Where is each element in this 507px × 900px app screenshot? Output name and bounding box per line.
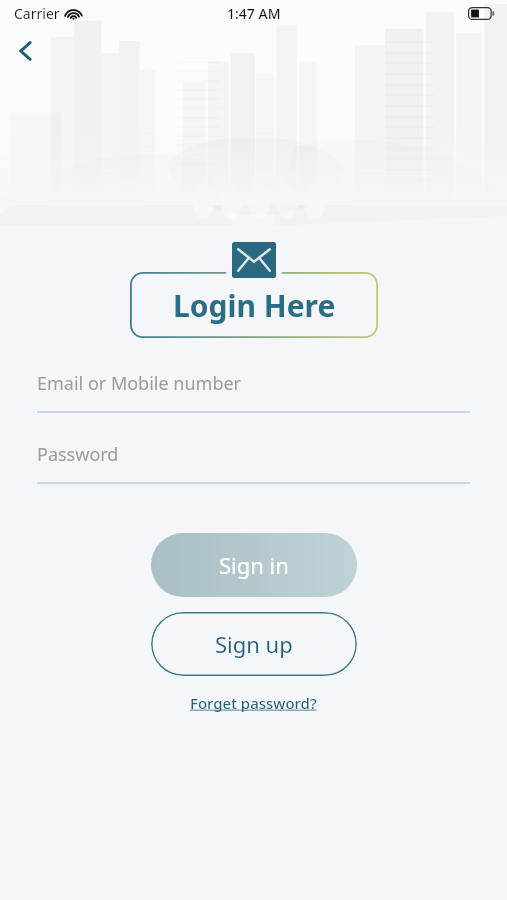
staticText: 1:47 AM bbox=[227, 4, 281, 23]
staticText: Email or Mobile number bbox=[37, 371, 242, 396]
staticText: Forget password? bbox=[190, 693, 317, 713]
button[interactable]: Password bbox=[37, 439, 470, 484]
button[interactable]: Sign in bbox=[151, 533, 357, 597]
button[interactable]: Email or Mobile number bbox=[37, 368, 470, 413]
staticText: Carrier bbox=[14, 4, 60, 23]
button[interactable]: Back bbox=[2, 28, 50, 74]
staticText: Login Here bbox=[173, 285, 336, 326]
staticText: Sign up bbox=[215, 629, 293, 659]
button[interactable]: Login Here bbox=[130, 272, 378, 338]
button[interactable]: Sign up bbox=[151, 612, 357, 676]
button[interactable]: Forget password? bbox=[182, 689, 325, 717]
staticText: Sign in bbox=[219, 550, 289, 580]
staticText: Password bbox=[37, 442, 119, 467]
button[interactable]: Email bbox=[232, 242, 276, 278]
